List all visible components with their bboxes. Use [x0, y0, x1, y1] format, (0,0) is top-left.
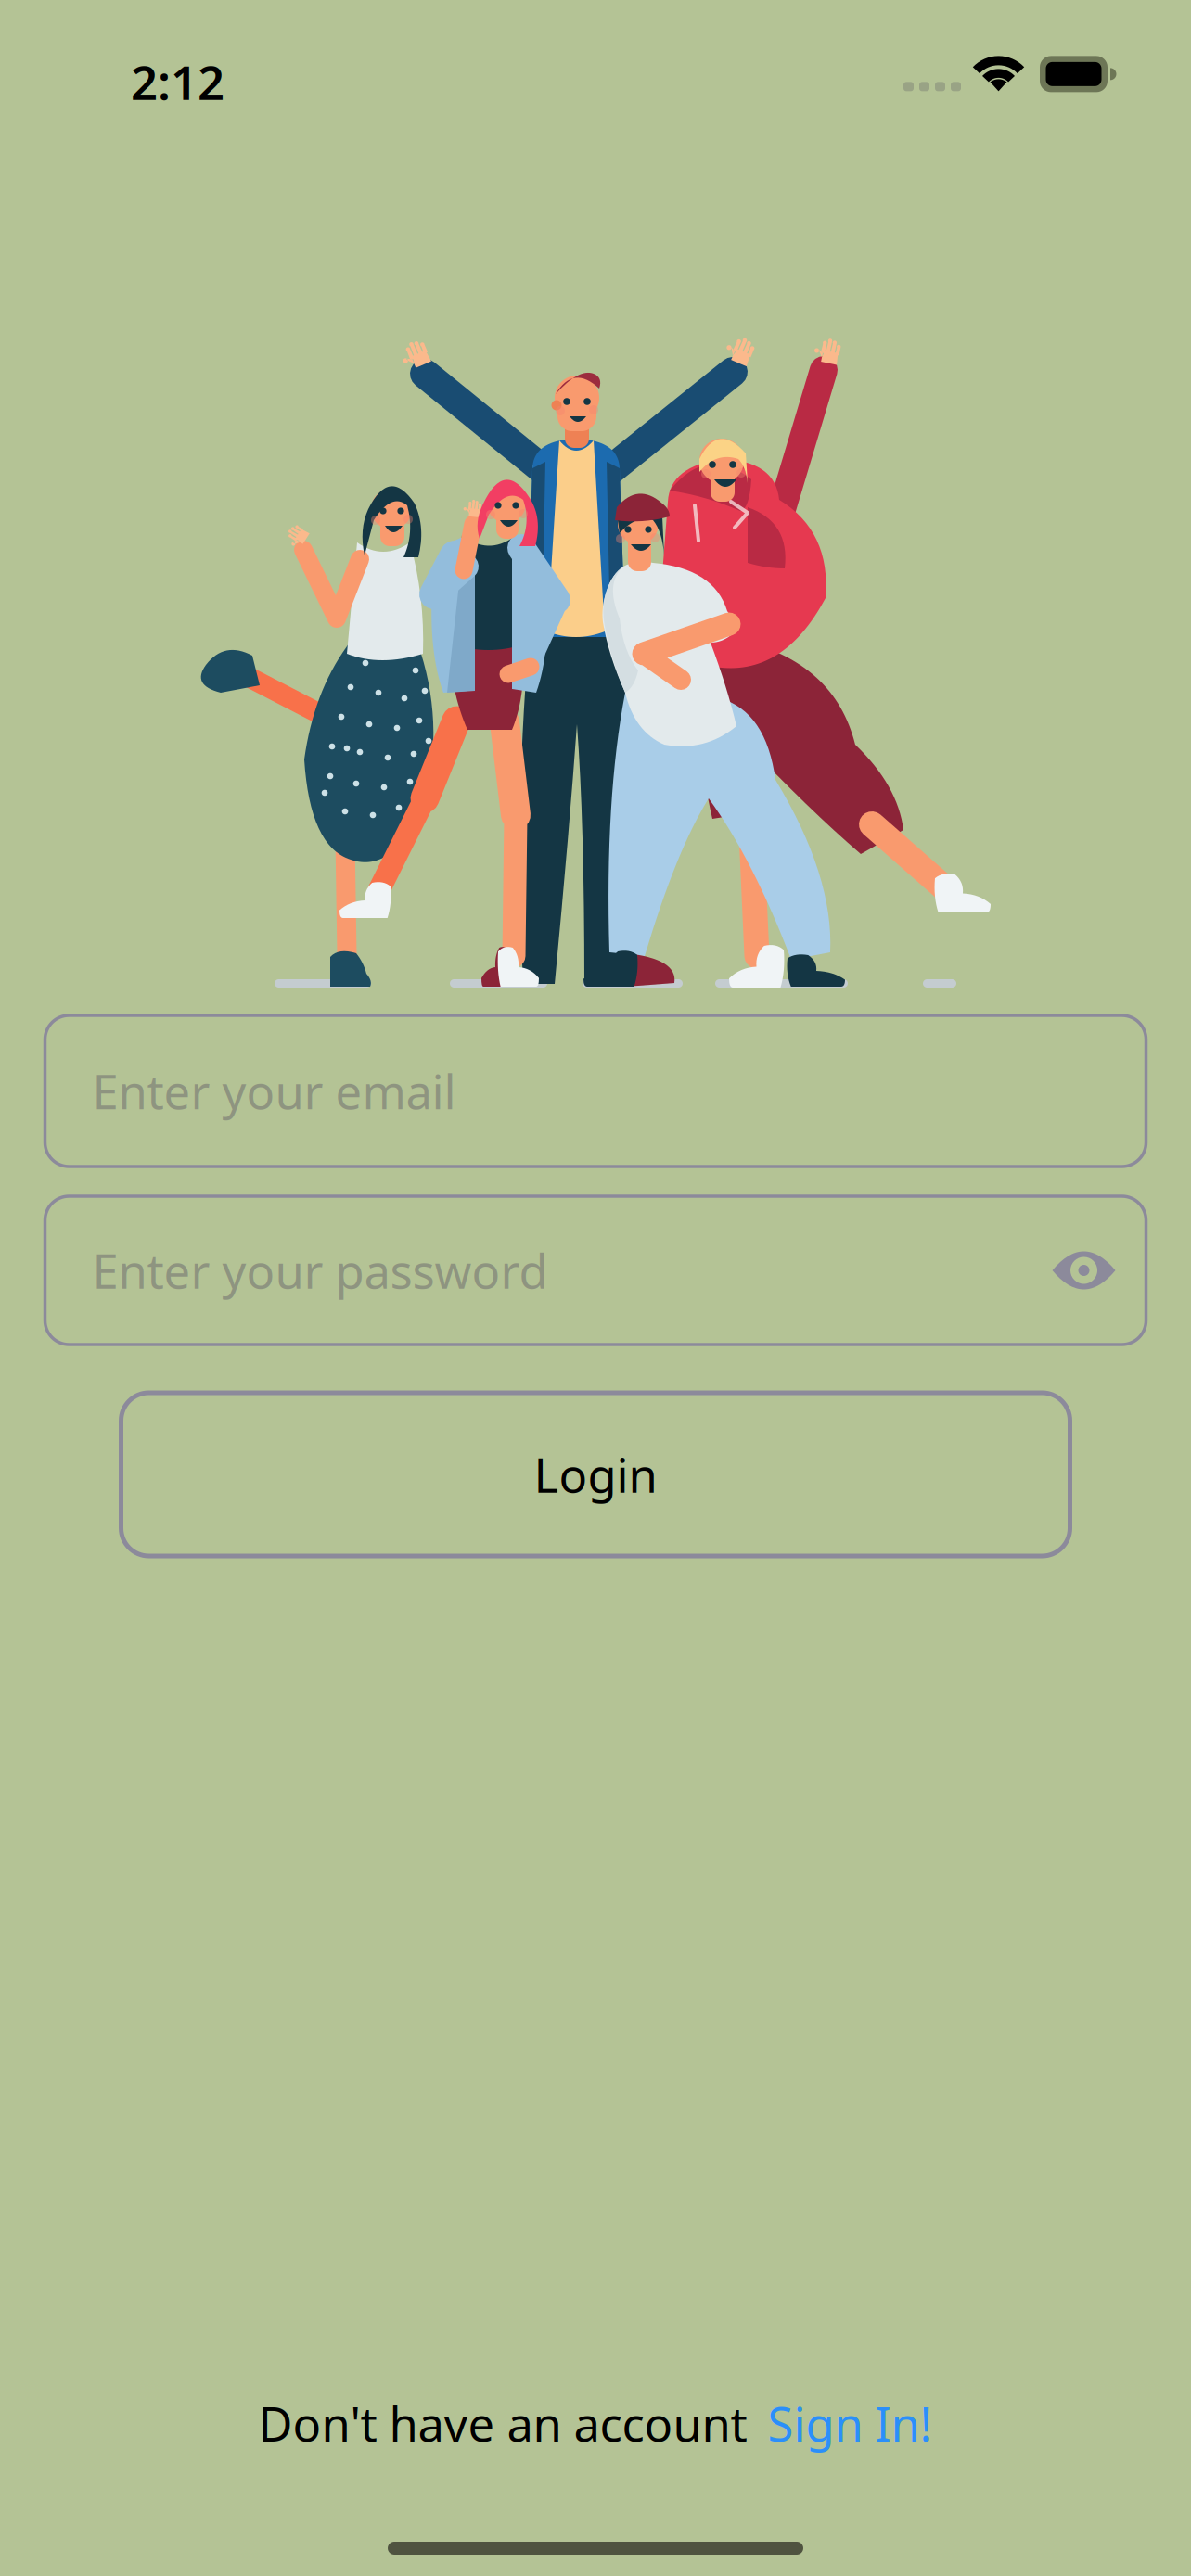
button[interactable]: Enter your password	[45, 1196, 1146, 1345]
staticText: 2:12	[131, 50, 224, 113]
button[interactable]: Login	[121, 1393, 1070, 1556]
staticText: Enter your email	[92, 1060, 456, 1122]
button[interactable]: Sign In!	[747, 2392, 933, 2455]
button[interactable]: Enter your email	[45, 1015, 1146, 1167]
staticText: Login	[534, 1443, 657, 1506]
staticText: Sign In!	[768, 2392, 933, 2455]
staticText: Don't have an account	[258, 2392, 747, 2455]
staticText: Enter your password	[92, 1239, 548, 1302]
button[interactable]: Show password	[1025, 1223, 1143, 1318]
